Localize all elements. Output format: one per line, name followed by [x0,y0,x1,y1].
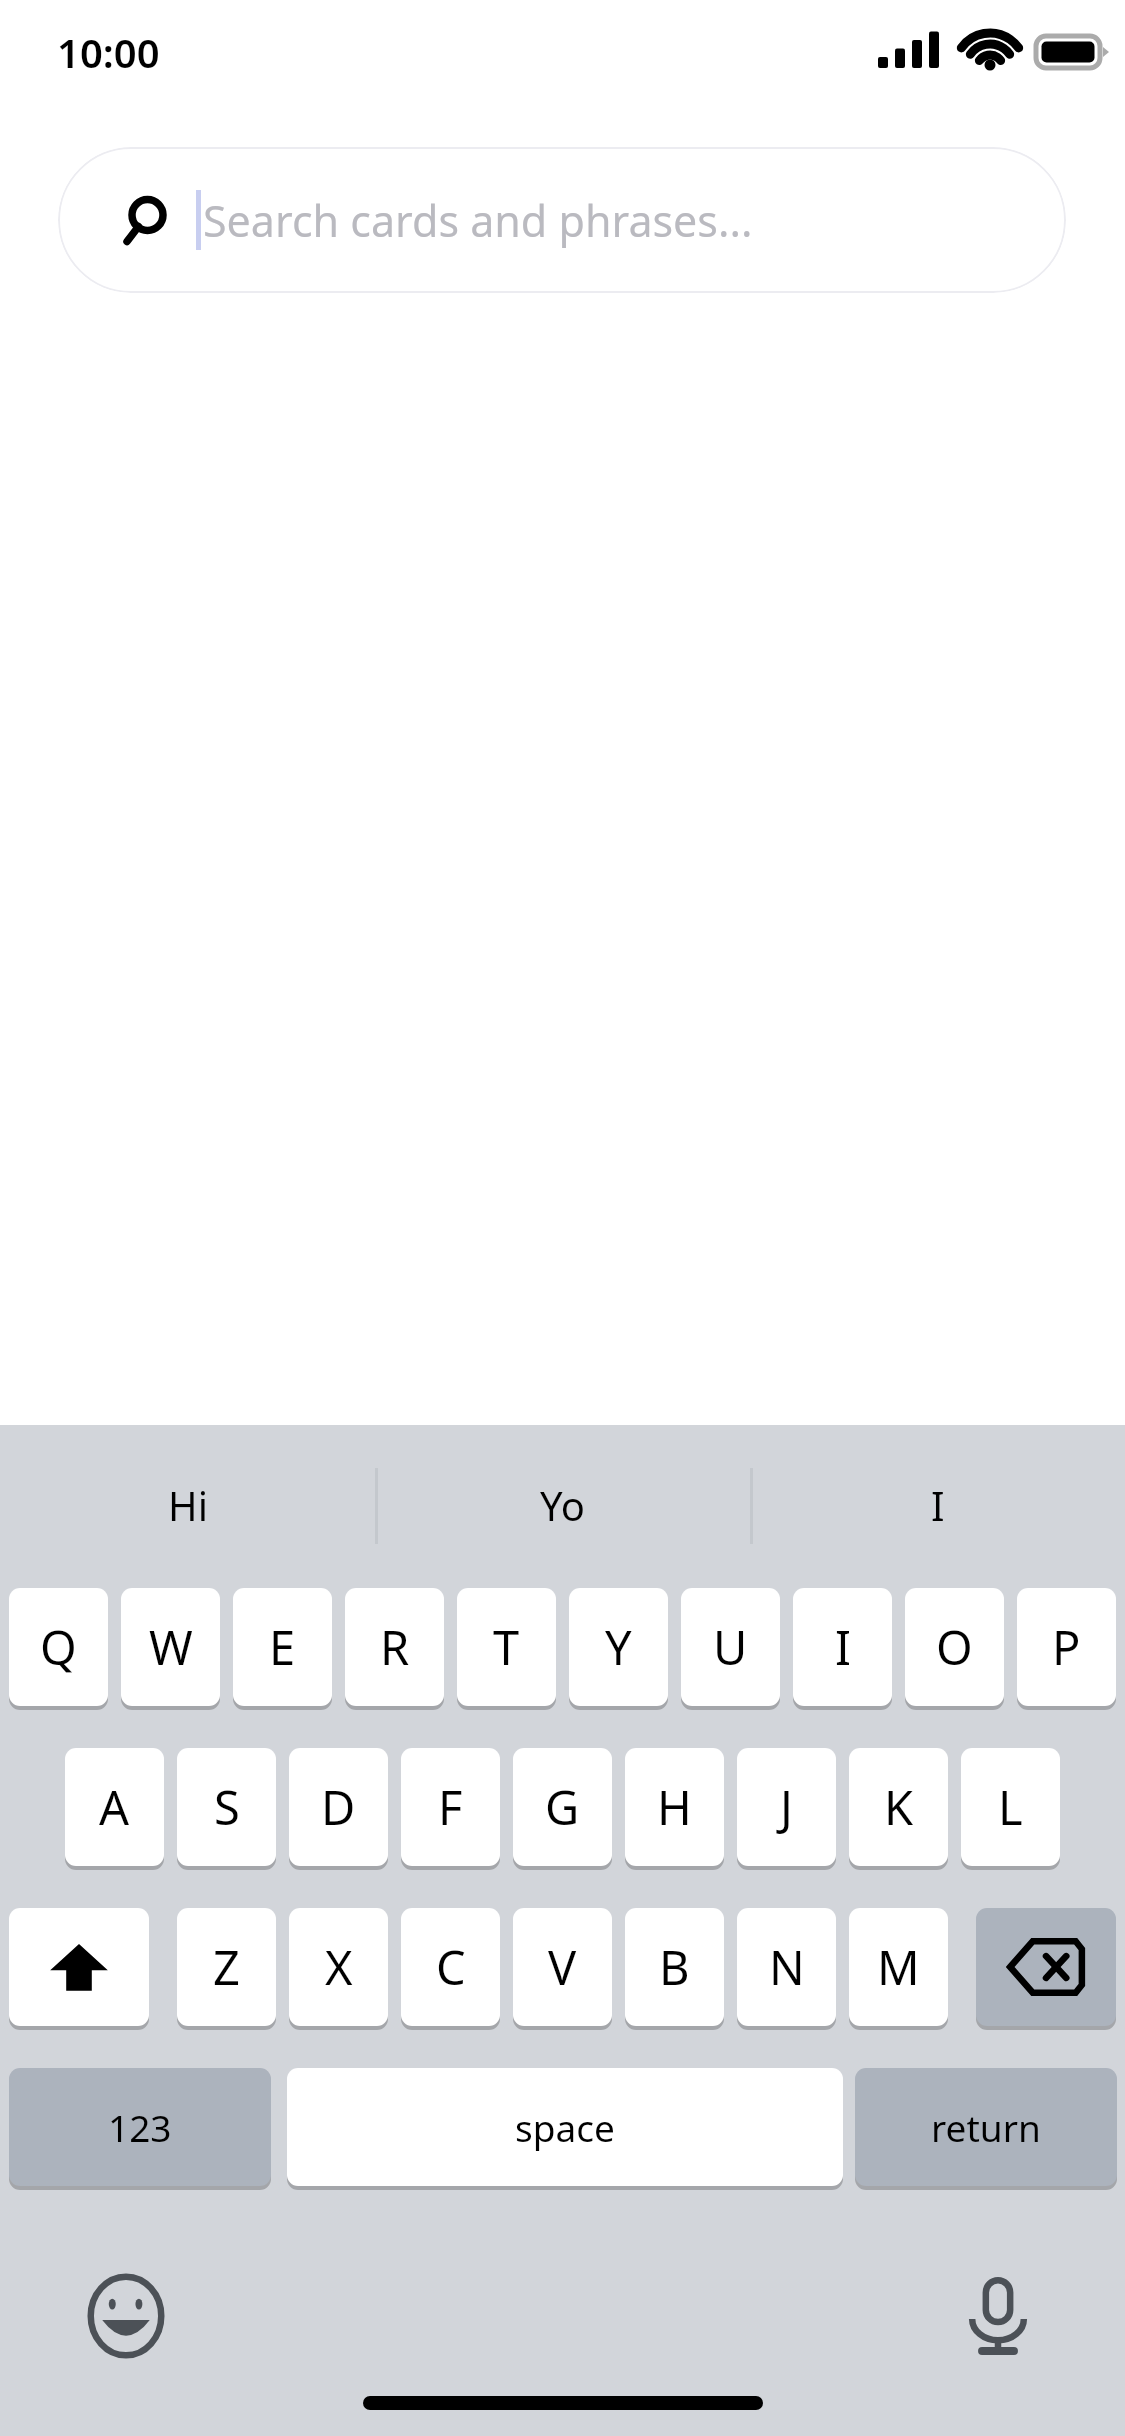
staticText: Search cards and phrases... [203,191,753,250]
button[interactable]: Y [569,1588,668,1706]
button[interactable]: I [793,1588,892,1706]
staticText: N [769,1935,805,1999]
button[interactable]: M [849,1908,948,2026]
button[interactable]: C [401,1908,500,2026]
button[interactable]: 123 [9,2068,271,2186]
staticText: Hi [168,1478,208,1532]
button[interactable]: J [737,1748,836,1866]
button[interactable]: space [287,2068,843,2186]
button[interactable]: E [233,1588,332,1706]
button[interactable]: Yo [375,1425,750,1585]
button[interactable]: P [1017,1588,1116,1706]
staticText: F [438,1775,463,1839]
staticText: K [884,1775,914,1839]
button[interactable]: Q [9,1588,108,1706]
staticText: Z [213,1935,240,1999]
button[interactable]: K [849,1748,948,1866]
staticText: X [325,1935,353,1999]
button[interactable]: R [345,1588,444,1706]
button[interactable]: B [625,1908,724,2026]
staticText: I [835,1615,851,1679]
button[interactable]: Hi [0,1425,375,1585]
button[interactable]: X [289,1908,388,2026]
staticText: E [269,1615,296,1679]
staticText: 123 [108,2102,172,2152]
staticText: H [657,1775,692,1839]
staticText: L [998,1775,1023,1839]
button[interactable]: U [681,1588,780,1706]
button[interactable]: return [855,2068,1117,2186]
staticText: Y [605,1615,632,1679]
button[interactable]: N [737,1908,836,2026]
button[interactable]: Backspace [976,1908,1116,2026]
staticText: B [659,1935,690,1999]
staticText: P [1052,1615,1081,1679]
staticText: 10:00 [57,25,160,79]
button[interactable]: Emoji keyboard [76,2266,176,2366]
button[interactable]: V [513,1908,612,2026]
staticText: space [515,2102,615,2152]
staticText: Yo [540,1478,585,1532]
button[interactable]: F [401,1748,500,1866]
button[interactable]: I [750,1425,1125,1585]
button[interactable]: Search cards and phrases... [58,147,1066,293]
staticText: G [545,1775,580,1839]
staticText: A [99,1775,130,1839]
button[interactable]: Shift [9,1908,149,2026]
button[interactable]: T [457,1588,556,1706]
staticText: T [493,1615,520,1679]
staticText: D [321,1775,356,1839]
button[interactable]: D [289,1748,388,1866]
staticText: O [936,1615,973,1679]
button[interactable]: H [625,1748,724,1866]
staticText: V [548,1935,577,1999]
staticText: I [931,1478,945,1532]
button[interactable]: G [513,1748,612,1866]
staticText: W [149,1615,193,1679]
staticText: C [436,1935,466,1999]
button[interactable]: L [961,1748,1060,1866]
staticText: S [214,1775,240,1839]
button[interactable]: W [121,1588,220,1706]
button[interactable]: O [905,1588,1004,1706]
button[interactable]: Z [177,1908,276,2026]
button[interactable]: S [177,1748,276,1866]
button[interactable]: Dictation [948,2266,1048,2366]
staticText: Q [40,1615,77,1679]
staticText: R [380,1615,410,1679]
staticText: J [780,1775,793,1839]
staticText: U [713,1615,748,1679]
button[interactable]: A [65,1748,164,1866]
staticText: return [931,2102,1041,2152]
staticText: M [877,1935,920,1999]
